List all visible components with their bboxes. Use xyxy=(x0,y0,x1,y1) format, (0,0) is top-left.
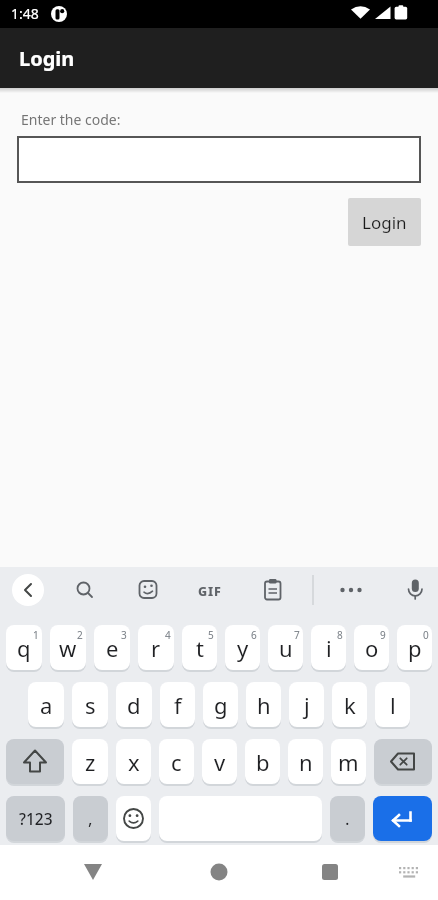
button[interactable]: a xyxy=(28,682,64,727)
button[interactable]: h xyxy=(246,682,281,727)
staticText: i xyxy=(326,633,332,663)
staticText: h xyxy=(257,690,271,720)
staticText: b xyxy=(256,747,270,777)
button[interactable]: m xyxy=(331,739,366,784)
staticText: j xyxy=(304,690,310,720)
button[interactable] xyxy=(292,845,438,900)
button[interactable]: x xyxy=(116,739,151,784)
button[interactable]: s xyxy=(72,682,108,727)
button[interactable]: , xyxy=(73,796,108,841)
staticText: ?123 xyxy=(19,808,53,829)
staticText: 8 xyxy=(337,628,343,642)
button[interactable]: g xyxy=(203,682,238,727)
button[interactable]: t xyxy=(182,625,217,670)
button[interactable]: n xyxy=(288,739,323,784)
staticText: 4 xyxy=(165,628,171,642)
button[interactable]: l xyxy=(375,682,410,727)
button[interactable]: k xyxy=(332,682,367,727)
staticText: m xyxy=(338,747,359,777)
button[interactable]: . xyxy=(330,796,365,841)
button[interactable]: Login xyxy=(348,198,421,246)
staticText: l xyxy=(390,690,396,720)
button[interactable]: c xyxy=(159,739,194,784)
staticText: 2 xyxy=(77,628,83,642)
staticText: Enter the code: xyxy=(21,110,121,129)
button[interactable]: z xyxy=(72,739,108,784)
staticText: 3 xyxy=(121,628,127,642)
staticText: z xyxy=(85,747,96,777)
button[interactable] xyxy=(373,796,432,841)
staticText: p xyxy=(408,633,422,663)
button[interactable] xyxy=(0,845,146,900)
button[interactable]: w xyxy=(50,625,86,670)
button[interactable]: u xyxy=(268,625,303,670)
staticText: w xyxy=(59,633,77,663)
staticText: . xyxy=(345,807,350,830)
button[interactable]: q xyxy=(6,625,42,670)
button[interactable] xyxy=(6,739,64,784)
staticText: k xyxy=(344,690,356,720)
staticText: Login xyxy=(362,211,407,234)
staticText: 7 xyxy=(294,628,300,642)
button[interactable] xyxy=(116,796,151,841)
staticText: n xyxy=(299,747,313,777)
staticText: 5 xyxy=(208,628,214,642)
button[interactable]: j xyxy=(289,682,324,727)
button[interactable]: b xyxy=(245,739,280,784)
staticText: y xyxy=(237,633,249,663)
button[interactable]: f xyxy=(160,682,195,727)
button[interactable] xyxy=(146,845,292,900)
staticText: q xyxy=(17,633,31,663)
staticText: 1 xyxy=(33,628,39,642)
staticText: a xyxy=(40,690,53,720)
staticText: v xyxy=(214,747,226,777)
button[interactable]: i xyxy=(311,625,346,670)
staticText: g xyxy=(214,690,228,720)
staticText: x xyxy=(128,747,140,777)
button[interactable] xyxy=(17,136,421,183)
staticText: c xyxy=(171,747,182,777)
staticText: u xyxy=(279,633,293,663)
button[interactable]: e xyxy=(94,625,130,670)
staticText: Login xyxy=(19,45,75,72)
staticText: o xyxy=(365,633,379,663)
button[interactable]: y xyxy=(225,625,260,670)
staticText: , xyxy=(88,807,93,830)
button[interactable]: ?123 xyxy=(6,796,65,841)
staticText: e xyxy=(106,633,119,663)
staticText: f xyxy=(174,690,182,720)
staticText: s xyxy=(85,690,96,720)
button[interactable]: d xyxy=(116,682,152,727)
staticText: d xyxy=(127,690,141,720)
staticText: 9 xyxy=(380,628,386,642)
button[interactable]: v xyxy=(202,739,237,784)
staticText: r xyxy=(151,633,161,663)
staticText: GIF xyxy=(198,583,222,600)
staticText: 1:48 xyxy=(11,4,39,23)
button[interactable]: r xyxy=(138,625,174,670)
button[interactable] xyxy=(374,739,432,784)
staticText: 6 xyxy=(251,628,257,642)
button[interactable]: p xyxy=(397,625,432,670)
staticText: 0 xyxy=(423,628,429,642)
button[interactable]: o xyxy=(354,625,389,670)
staticText: t xyxy=(196,633,204,663)
